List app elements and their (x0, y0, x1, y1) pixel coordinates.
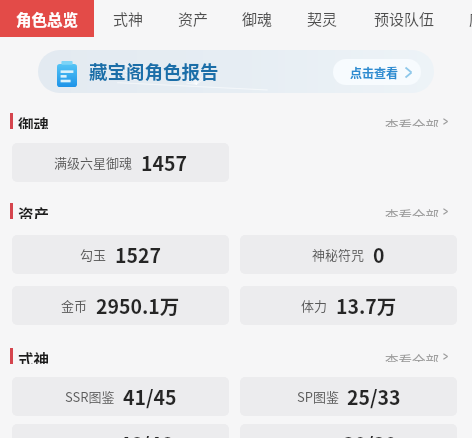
staticText: SSR图鉴 (65, 387, 115, 406)
button[interactable]: 契灵 (291, 0, 353, 37)
staticText: 查看全部 (385, 115, 439, 127)
staticText: 13.7万 (336, 291, 397, 319)
staticText: 体力 (301, 296, 328, 315)
staticText: 御魂 (242, 8, 273, 30)
staticText: 点击查看 (350, 64, 399, 81)
staticText: 预设队伍 (374, 8, 435, 30)
button[interactable]: 满级六星御魂 (12, 143, 229, 182)
staticText: 式神 (113, 8, 144, 30)
button[interactable]: 查看全部 (381, 203, 453, 219)
staticText: 角色总览 (16, 8, 79, 30)
staticText: 41/45 (123, 382, 177, 410)
button[interactable]: 角色总览 (0, 0, 94, 37)
button[interactable]: R图鉴 (240, 424, 457, 438)
staticText: 2950.1万 (96, 291, 180, 319)
button[interactable]: 藏宝阁角色报告 (38, 50, 434, 93)
staticText: 藏宝阁角色报告 (89, 58, 219, 85)
button[interactable]: 查看全部 (381, 348, 453, 364)
button[interactable]: 金币 (12, 286, 229, 325)
button[interactable]: 神秘符咒 (240, 235, 457, 274)
staticText: 1527 (115, 240, 162, 268)
button[interactable]: SR图鉴 (12, 424, 229, 438)
button[interactable]: 点击查看 (333, 59, 421, 85)
staticText: 神秘符咒 (312, 245, 365, 264)
staticText: 式神 (18, 348, 50, 364)
button[interactable]: 体力 (240, 286, 457, 325)
button[interactable]: SP图鉴 (240, 377, 457, 416)
staticText: 查看全部 (385, 350, 439, 362)
staticText: 资产 (18, 203, 50, 219)
button[interactable]: 预设队伍 (358, 0, 450, 37)
button[interactable]: 式神 (97, 0, 159, 37)
button[interactable]: 资产 (162, 0, 224, 37)
staticText: 资产 (178, 8, 209, 30)
button[interactable]: 御魂 (226, 0, 288, 37)
staticText: 0 (373, 240, 385, 268)
button[interactable]: 查看全部 (381, 113, 453, 129)
button[interactable]: 勾玉 (12, 235, 229, 274)
button[interactable]: 庭院 (453, 0, 472, 37)
staticText: 46/46 (119, 429, 173, 438)
button[interactable]: SSR图鉴 (12, 377, 229, 416)
staticText: 1457 (141, 148, 188, 176)
staticText: 庭院 (469, 8, 472, 30)
staticText: 查看全部 (385, 205, 439, 217)
staticText: SP图鉴 (297, 387, 339, 406)
staticText: 御魂 (18, 113, 50, 129)
staticText: 契灵 (307, 8, 338, 30)
staticText: 30/30 (343, 429, 397, 438)
staticText: 勾玉 (80, 245, 107, 264)
staticText: 金币 (61, 296, 88, 315)
staticText: 25/33 (347, 382, 401, 410)
staticText: 满级六星御魂 (54, 153, 133, 172)
